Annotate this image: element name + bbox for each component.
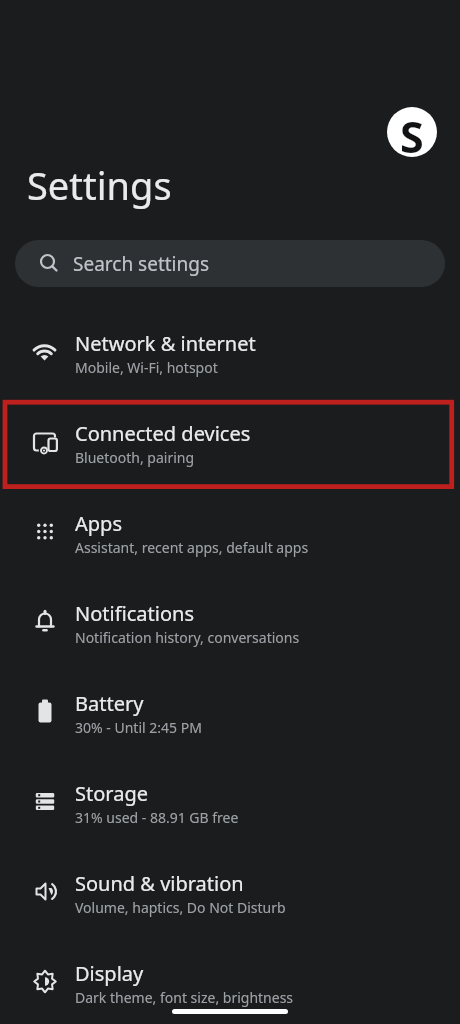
button[interactable]: Search settings [15,240,445,287]
staticText: Battery [75,690,144,717]
staticText: Search settings [73,251,210,277]
staticText: Mobile, Wi-Fi, hotspot [75,358,218,377]
staticText: Notifications [75,600,194,627]
staticText: Settings [27,159,172,211]
staticText: Apps [75,510,122,537]
button[interactable]: Storage [0,752,460,842]
staticText: 31% used - 88.91 GB free [75,808,239,827]
staticText: Network & internet [75,330,256,357]
staticText: S [400,107,424,157]
staticText: Dark theme, font size, brightness [75,988,294,1007]
staticText: Display [75,960,144,987]
staticText: Storage [75,780,148,807]
staticText: Bluetooth, pairing [75,448,195,467]
button[interactable]: Apps [0,482,460,572]
button[interactable]: Display [0,932,460,1022]
button[interactable]: Connected devices [0,392,460,482]
button[interactable]: S [387,107,437,157]
staticText: Assistant, recent apps, default apps [75,538,309,557]
button[interactable]: Network & internet [0,302,460,392]
staticText: Volume, haptics, Do Not Disturb [75,898,286,917]
staticText: 30% - Until 2:45 PM [75,718,202,737]
button[interactable]: Battery [0,662,460,752]
button[interactable]: Notifications [0,572,460,662]
button[interactable]: Sound & vibration [0,842,460,932]
staticText: Sound & vibration [75,870,244,897]
staticText: Connected devices [75,420,251,447]
staticText: Notification history, conversations [75,628,300,647]
